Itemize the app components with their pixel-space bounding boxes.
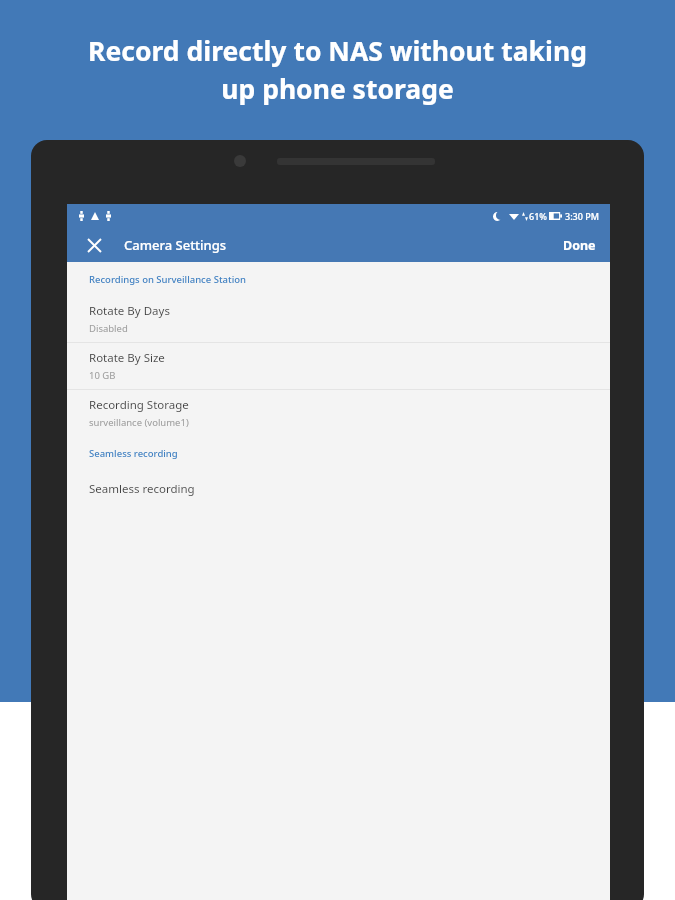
staticText: Recordings on Surveillance Station bbox=[89, 273, 246, 286]
staticText: Seamless recording bbox=[89, 447, 178, 460]
button[interactable]: Seamless recording bbox=[67, 470, 610, 508]
staticText: 61% bbox=[529, 210, 547, 222]
button[interactable]: Rotate By Size bbox=[67, 343, 610, 389]
staticText: 3:30 PM bbox=[565, 210, 599, 222]
button[interactable]: Done bbox=[549, 231, 610, 260]
staticText: up phone storage bbox=[221, 71, 454, 107]
button[interactable]: Rotate By Days bbox=[67, 296, 610, 342]
staticText: surveillance (volume1) bbox=[89, 416, 189, 429]
staticText: Camera Settings bbox=[124, 236, 227, 254]
staticText: Rotate By Days bbox=[89, 303, 170, 319]
staticText: Done bbox=[563, 237, 596, 254]
staticText: 10 GB bbox=[89, 369, 116, 382]
staticText: Rotate By Size bbox=[89, 350, 165, 366]
staticText: Record directly to NAS without taking bbox=[88, 33, 587, 69]
button[interactable]: Close bbox=[81, 232, 107, 258]
staticText: Seamless recording bbox=[89, 481, 195, 497]
staticText: Disabled bbox=[89, 322, 128, 335]
staticText: Recording Storage bbox=[89, 397, 189, 413]
button[interactable]: Recording Storage bbox=[67, 390, 610, 436]
